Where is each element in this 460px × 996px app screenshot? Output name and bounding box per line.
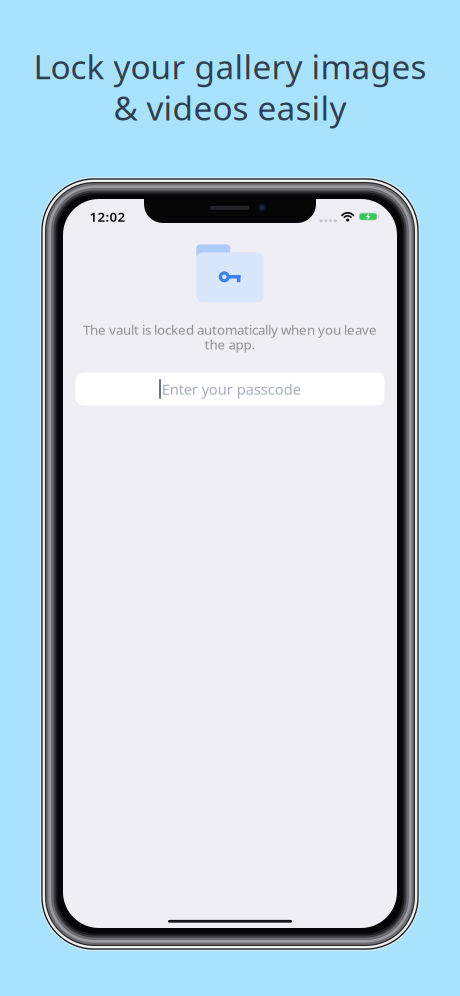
staticText: 12:02 — [89, 208, 125, 225]
staticText: the app. — [204, 335, 255, 353]
staticText: Lock your gallery images — [33, 44, 426, 88]
button[interactable]: Enter your passcode — [75, 372, 384, 405]
staticText: & videos easily — [113, 85, 346, 130]
staticText: The vault is locked automatically when y… — [83, 321, 377, 338]
staticText: Enter your passcode — [162, 379, 301, 399]
